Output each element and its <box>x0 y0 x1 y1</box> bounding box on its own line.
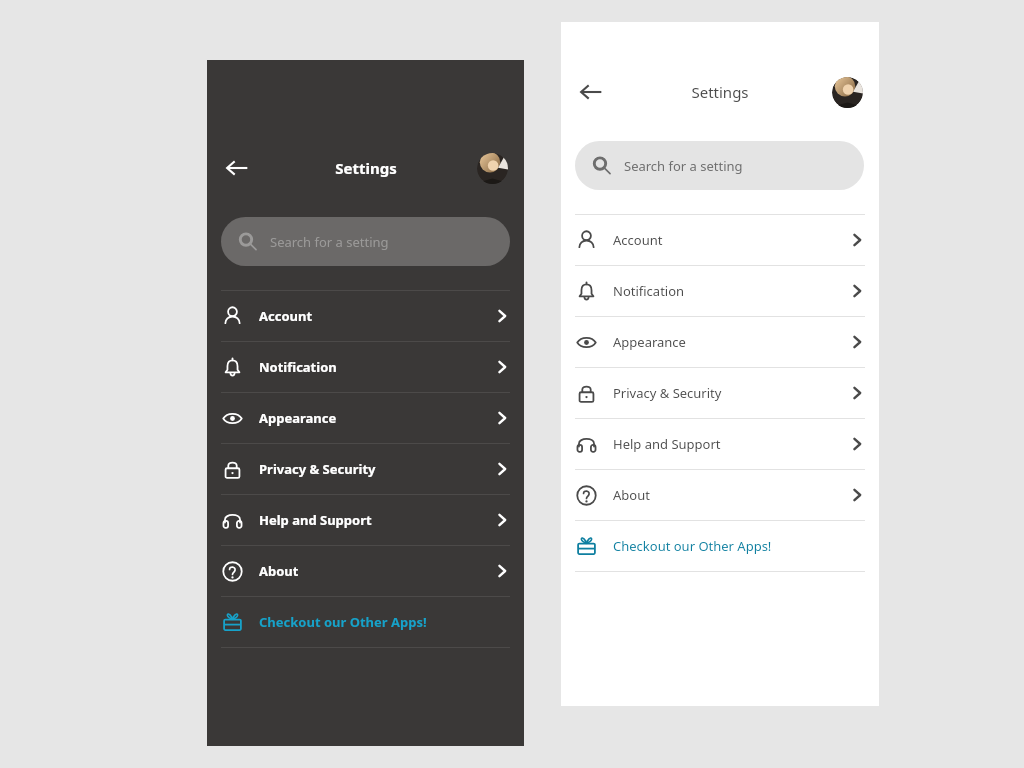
button[interactable]: Appearance <box>207 393 524 443</box>
button[interactable]: Privacy & Security <box>561 368 879 418</box>
staticText: Account <box>259 307 313 325</box>
staticText: Notification <box>613 282 685 300</box>
staticText: Help and Support <box>259 511 372 529</box>
button[interactable]: Checkout our Other Apps! <box>207 597 524 647</box>
button[interactable]: Back <box>575 76 607 108</box>
button[interactable]: Search for a setting <box>221 217 510 266</box>
staticText: Notification <box>259 358 337 376</box>
staticText: Checkout our Other Apps! <box>613 537 772 555</box>
staticText: Settings <box>335 158 397 178</box>
staticText: About <box>259 562 299 580</box>
button[interactable]: Help and Support <box>207 495 524 545</box>
button[interactable]: Help and Support <box>561 419 879 469</box>
button[interactable]: Back <box>221 152 253 184</box>
staticText: Help and Support <box>613 435 721 453</box>
staticText: Appearance <box>259 409 337 427</box>
staticText: Checkout our Other Apps! <box>259 613 427 631</box>
staticText: Search for a setting <box>624 157 743 175</box>
staticText: Search for a setting <box>270 233 389 251</box>
button[interactable]: Account <box>207 291 524 341</box>
button[interactable]: About <box>561 470 879 520</box>
button[interactable]: Profile <box>477 153 508 184</box>
button[interactable]: Profile <box>832 77 863 108</box>
button[interactable]: Checkout our Other Apps! <box>561 521 879 571</box>
button[interactable]: Search for a setting <box>575 141 864 190</box>
button[interactable]: Notification <box>207 342 524 392</box>
button[interactable]: Account <box>561 215 879 265</box>
staticText: About <box>613 486 650 504</box>
button[interactable]: About <box>207 546 524 596</box>
button[interactable]: Privacy & Security <box>207 444 524 494</box>
staticText: Privacy & Security <box>613 384 722 402</box>
staticText: Settings <box>691 82 749 102</box>
button[interactable]: Appearance <box>561 317 879 367</box>
staticText: Account <box>613 231 663 249</box>
button[interactable]: Notification <box>561 266 879 316</box>
staticText: Privacy & Security <box>259 460 376 478</box>
staticText: Appearance <box>613 333 686 351</box>
